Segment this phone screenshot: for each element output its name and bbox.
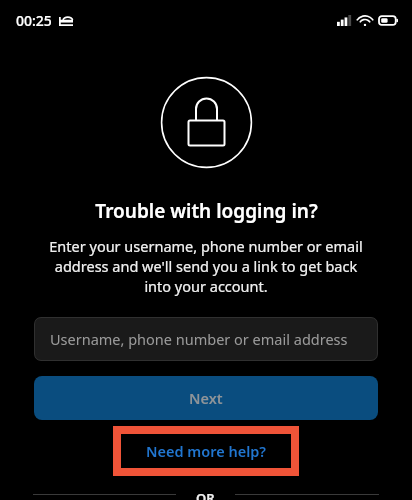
button[interactable]: Username, phone number or email address [34, 317, 378, 361]
button[interactable]: Next [34, 376, 378, 420]
button[interactable]: Need more help? [121, 434, 291, 468]
staticText: Need more help? [146, 441, 267, 461]
staticText: Next [189, 388, 223, 408]
staticText: Username, phone number or email address [50, 329, 348, 349]
staticText: 00:25 [16, 11, 52, 30]
staticText: OR [196, 489, 215, 500]
staticText: Enter your username, phone number or ema… [46, 236, 366, 296]
staticText: Trouble with logging in? [95, 198, 318, 224]
